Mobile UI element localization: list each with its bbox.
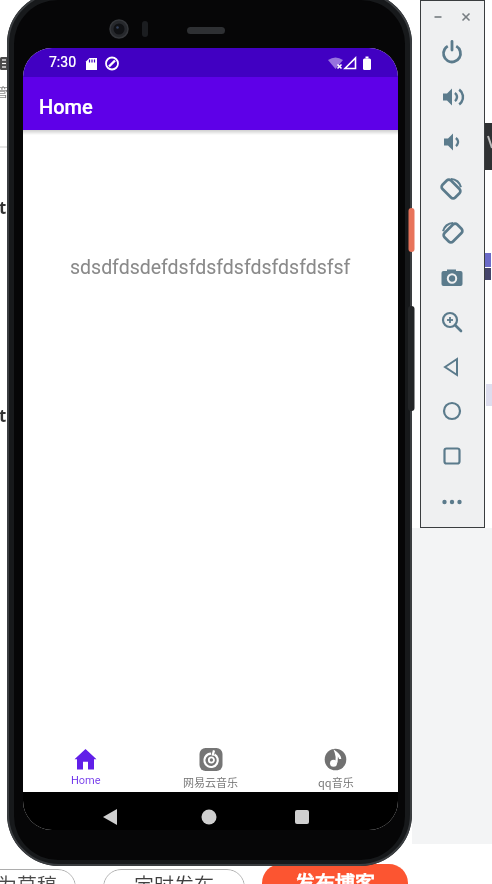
staticText: sdsdfdsdefdsfdsfdsfdsfdsfdsfsf <box>70 256 351 279</box>
button[interactable]: 网易云音乐 <box>148 735 273 792</box>
button[interactable] <box>95 802 125 830</box>
button[interactable] <box>194 802 224 830</box>
staticText: 为草稿 <box>0 870 57 884</box>
staticText: 网易云音乐 <box>183 774 238 790</box>
button[interactable] <box>434 170 470 206</box>
staticText: Home <box>39 95 93 118</box>
staticText: t <box>0 404 7 427</box>
button[interactable]: qq音乐 <box>273 735 398 792</box>
button[interactable] <box>434 393 470 429</box>
button[interactable] <box>287 802 317 830</box>
staticText: t <box>0 196 7 219</box>
staticText: 定时发布 <box>134 870 214 884</box>
staticText: Home <box>71 774 101 787</box>
staticText: 发布博客 <box>295 868 375 884</box>
button[interactable] <box>456 7 476 27</box>
button[interactable] <box>434 79 470 115</box>
button[interactable]: 定时发布 <box>103 869 245 884</box>
button[interactable]: Home <box>23 735 148 792</box>
button[interactable] <box>434 304 470 340</box>
button[interactable] <box>434 259 470 295</box>
button[interactable] <box>434 438 470 474</box>
button[interactable]: 发布博客 <box>262 864 408 884</box>
button[interactable] <box>428 7 448 27</box>
button[interactable] <box>434 484 470 520</box>
button[interactable] <box>434 214 470 250</box>
button[interactable] <box>434 349 470 385</box>
staticText: 管 <box>0 83 9 100</box>
staticText: qq音乐 <box>318 774 354 790</box>
button[interactable] <box>434 35 470 71</box>
button[interactable]: 为草稿 <box>0 869 76 884</box>
button[interactable] <box>434 124 470 160</box>
staticText: 7:30 <box>49 54 76 70</box>
